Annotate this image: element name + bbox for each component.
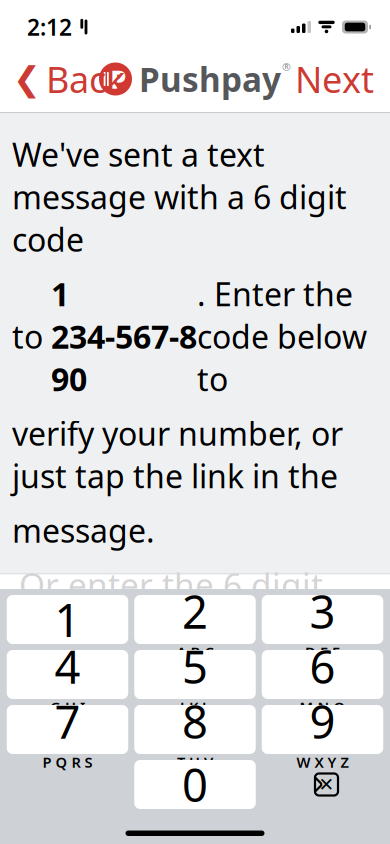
staticText: 1 xyxy=(54,589,80,650)
staticText: message. xyxy=(12,509,155,551)
button[interactable]: 6 xyxy=(262,650,383,699)
staticText: ® xyxy=(282,60,291,74)
button[interactable]: 0 xyxy=(134,760,256,809)
staticText: M N O xyxy=(299,697,345,717)
button[interactable]: Change number xyxy=(96,731,297,767)
staticText: 6 xyxy=(309,636,335,696)
staticText: 1 234-567-890 xyxy=(51,272,197,400)
button[interactable]: 8 xyxy=(134,705,256,754)
staticText: to xyxy=(12,315,51,357)
button[interactable]: 4 xyxy=(7,650,128,699)
staticText: G H I xyxy=(50,697,85,717)
staticText: P xyxy=(110,62,126,96)
staticText: 4 xyxy=(54,636,80,696)
button[interactable]: 7 xyxy=(7,705,128,754)
staticText: J K L xyxy=(180,697,210,717)
staticText: Note: Your text message may take a few m… xyxy=(9,652,358,723)
staticText: Pushpay xyxy=(139,57,281,101)
staticText: 3 xyxy=(309,581,335,641)
staticText: 2:12 xyxy=(27,12,72,42)
staticText: 2 xyxy=(182,581,208,641)
staticText: P Q R S xyxy=(42,752,92,772)
staticText: 5 xyxy=(182,636,208,696)
staticText: D E F xyxy=(305,642,340,662)
staticText: 8 xyxy=(182,691,208,751)
staticText: Next xyxy=(295,55,374,103)
staticText: A B C xyxy=(176,642,213,662)
staticText: Change number xyxy=(96,731,297,767)
staticText: Back xyxy=(46,55,125,103)
button[interactable]: ❮ xyxy=(0,50,125,108)
button[interactable]: Delete xyxy=(262,760,383,809)
staticText: ❮ xyxy=(13,60,41,98)
button[interactable]: 9 xyxy=(262,705,383,754)
button[interactable]: 3 xyxy=(262,595,383,644)
button[interactable]: 1 xyxy=(7,595,128,644)
staticText: 0 xyxy=(182,754,208,815)
staticText: . Enter the code below to xyxy=(197,272,367,400)
staticText: Or enter the 6 digit code xyxy=(19,562,323,651)
staticText: 9 xyxy=(309,691,335,751)
staticText: W X Y Z xyxy=(296,752,348,772)
staticText: ✕ xyxy=(318,774,334,795)
button[interactable]: 2 xyxy=(134,595,256,644)
staticText: 7 xyxy=(54,691,80,751)
staticText: T U V xyxy=(177,752,213,772)
button[interactable]: 5 xyxy=(134,650,256,699)
staticText: verify your number, or just tap the link… xyxy=(12,412,343,497)
button[interactable]: Or enter the 6 digit code xyxy=(0,574,390,638)
staticText: We've sent a text message with a 6 digit… xyxy=(12,133,347,260)
staticText: arrive. xyxy=(9,731,96,767)
button[interactable]: Next xyxy=(295,50,390,108)
